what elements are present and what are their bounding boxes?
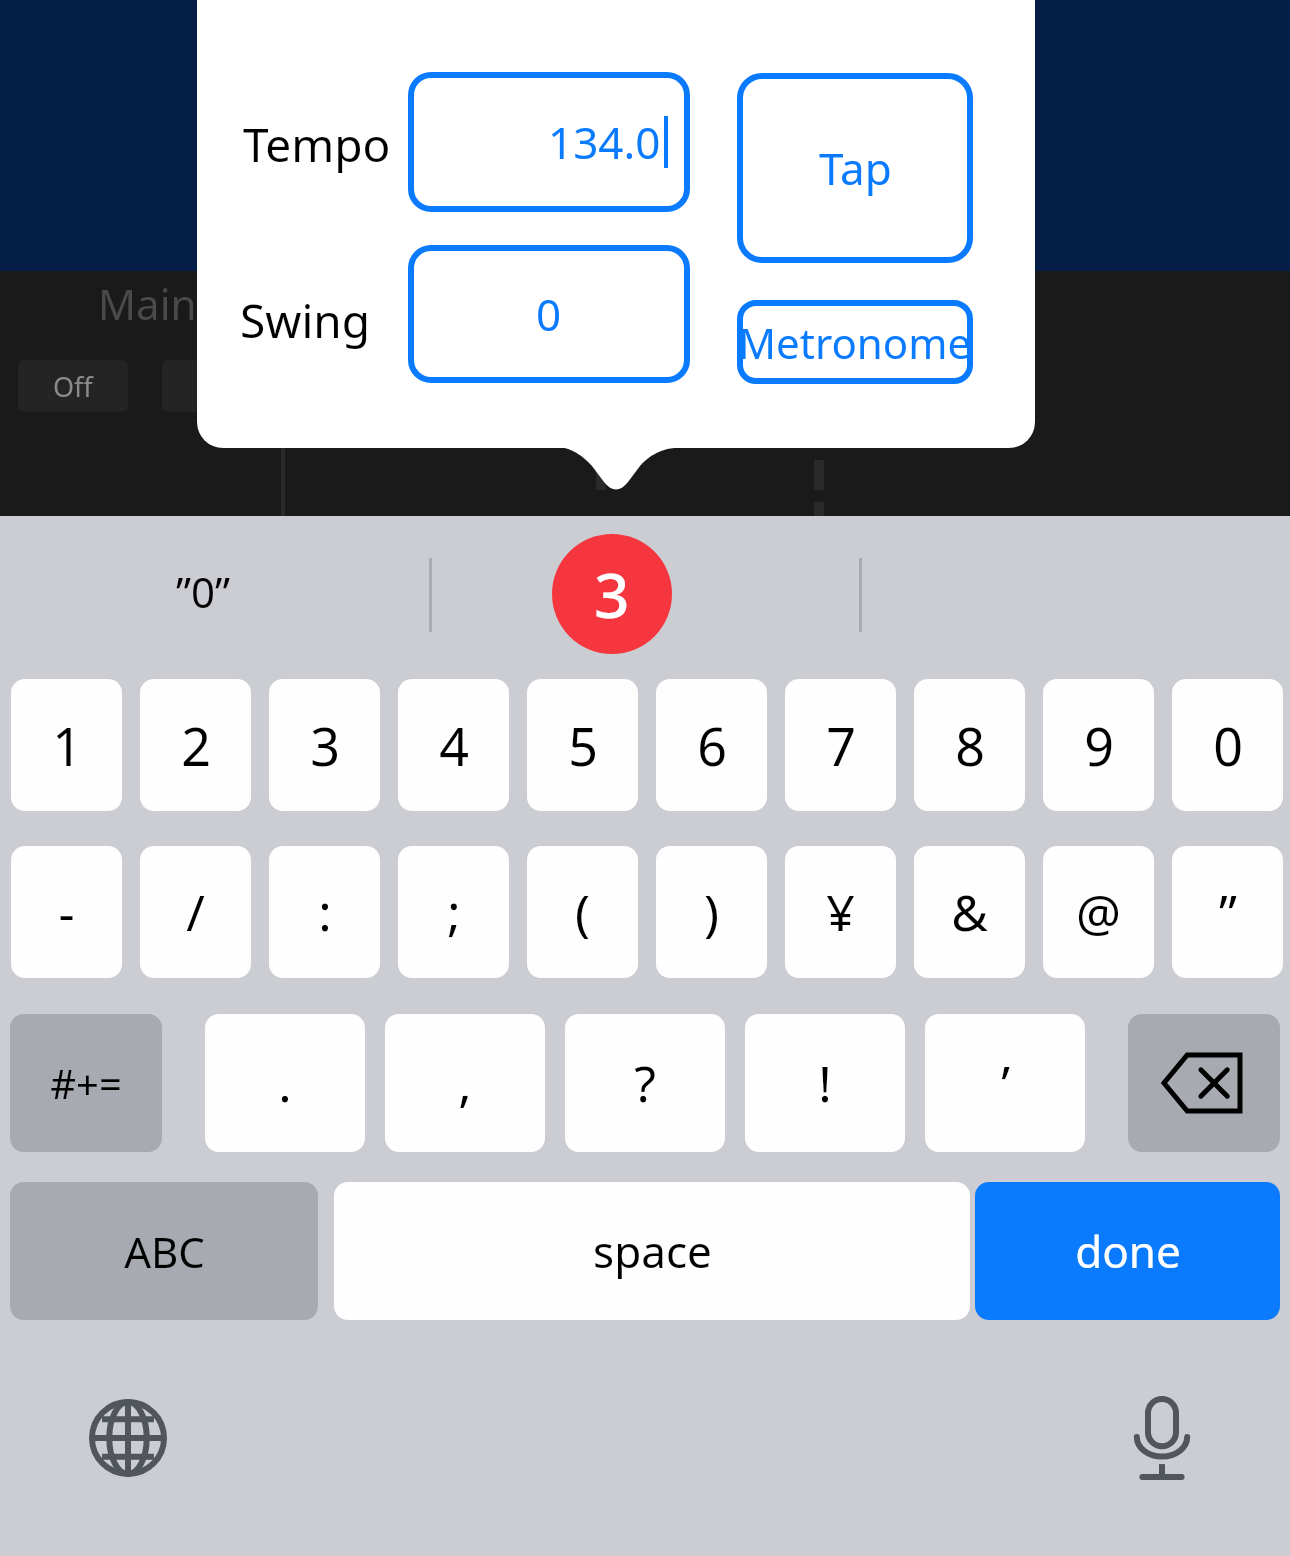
staticText: done: [1075, 1221, 1181, 1281]
button[interactable]: ,: [385, 1014, 545, 1152]
staticText: ”: [1219, 878, 1237, 946]
staticText: 9: [1084, 710, 1114, 781]
staticText: (: [575, 878, 590, 946]
staticText: .: [278, 1049, 292, 1117]
button[interactable]: Change keyboard: [84, 1394, 172, 1482]
button[interactable]: #+=: [10, 1014, 162, 1152]
button[interactable]: 9: [1043, 679, 1154, 811]
staticText: :: [318, 878, 332, 946]
staticText: ”0”: [176, 563, 231, 620]
button[interactable]: ”: [1172, 846, 1283, 978]
staticText: Tap: [819, 138, 892, 198]
staticText: 4: [439, 710, 469, 781]
button[interactable]: @: [1043, 846, 1154, 978]
button[interactable]: space: [334, 1182, 970, 1320]
button[interactable]: done: [975, 1182, 1280, 1320]
button[interactable]: 8: [914, 679, 1025, 811]
staticText: Off: [53, 368, 93, 405]
staticText: ,: [458, 1049, 472, 1117]
staticText: @: [1076, 878, 1121, 946]
button[interactable]: 3: [552, 534, 672, 654]
button[interactable]: Tap: [737, 73, 973, 263]
staticText: ): [704, 878, 719, 946]
staticText: &: [951, 878, 988, 946]
button[interactable]: ABC: [10, 1182, 318, 1320]
staticText: Metronome: [738, 314, 972, 371]
staticText: 134.0: [548, 112, 661, 172]
staticText: 1: [52, 710, 82, 781]
button[interactable]: 134.0: [408, 72, 690, 212]
button[interactable]: ;: [398, 846, 509, 978]
staticText: 8: [955, 710, 985, 781]
button[interactable]: ¥: [785, 846, 896, 978]
staticText: 3: [310, 710, 340, 781]
button[interactable]: /: [140, 846, 251, 978]
staticText: ABC: [124, 1223, 205, 1280]
button[interactable]: &: [914, 846, 1025, 978]
staticText: -: [58, 878, 75, 946]
staticText: 5: [568, 710, 598, 781]
button[interactable]: :: [269, 846, 380, 978]
button[interactable]: 7: [785, 679, 896, 811]
staticText: 0: [536, 284, 562, 344]
staticText: Swing: [240, 289, 370, 352]
staticText: ’: [1001, 1049, 1010, 1117]
button[interactable]: 6: [656, 679, 767, 811]
staticText: !: [818, 1049, 832, 1117]
staticText: ¥: [826, 878, 855, 946]
staticText: /: [186, 878, 205, 946]
staticText: 6: [697, 710, 727, 781]
staticText: Main: [98, 275, 197, 332]
staticText: 0: [1213, 710, 1243, 781]
staticText: 2: [181, 710, 211, 781]
button[interactable]: 2: [140, 679, 251, 811]
staticText: ?: [634, 1049, 656, 1117]
button[interactable]: !: [745, 1014, 905, 1152]
button[interactable]: 1: [11, 679, 122, 811]
button[interactable]: Re: [162, 360, 272, 412]
button[interactable]: 0: [408, 245, 690, 383]
button[interactable]: Off: [18, 360, 128, 412]
button[interactable]: .: [205, 1014, 365, 1152]
button[interactable]: Delete: [1128, 1014, 1280, 1152]
staticText: #+=: [50, 1056, 122, 1110]
button[interactable]: 4: [398, 679, 509, 811]
button[interactable]: ?: [565, 1014, 725, 1152]
button[interactable]: Dictate: [1118, 1396, 1206, 1484]
button[interactable]: ’: [925, 1014, 1085, 1152]
button[interactable]: 5: [527, 679, 638, 811]
staticText: ;: [447, 878, 461, 946]
staticText: Tempo: [243, 113, 391, 176]
staticText: 7: [826, 710, 856, 781]
button[interactable]: 0: [1172, 679, 1283, 811]
button[interactable]: 3: [269, 679, 380, 811]
button[interactable]: Metronome: [737, 300, 973, 384]
button[interactable]: (: [527, 846, 638, 978]
button[interactable]: -: [11, 846, 122, 978]
staticText: 3: [594, 552, 630, 636]
staticText: space: [593, 1221, 712, 1281]
button[interactable]: ): [656, 846, 767, 978]
